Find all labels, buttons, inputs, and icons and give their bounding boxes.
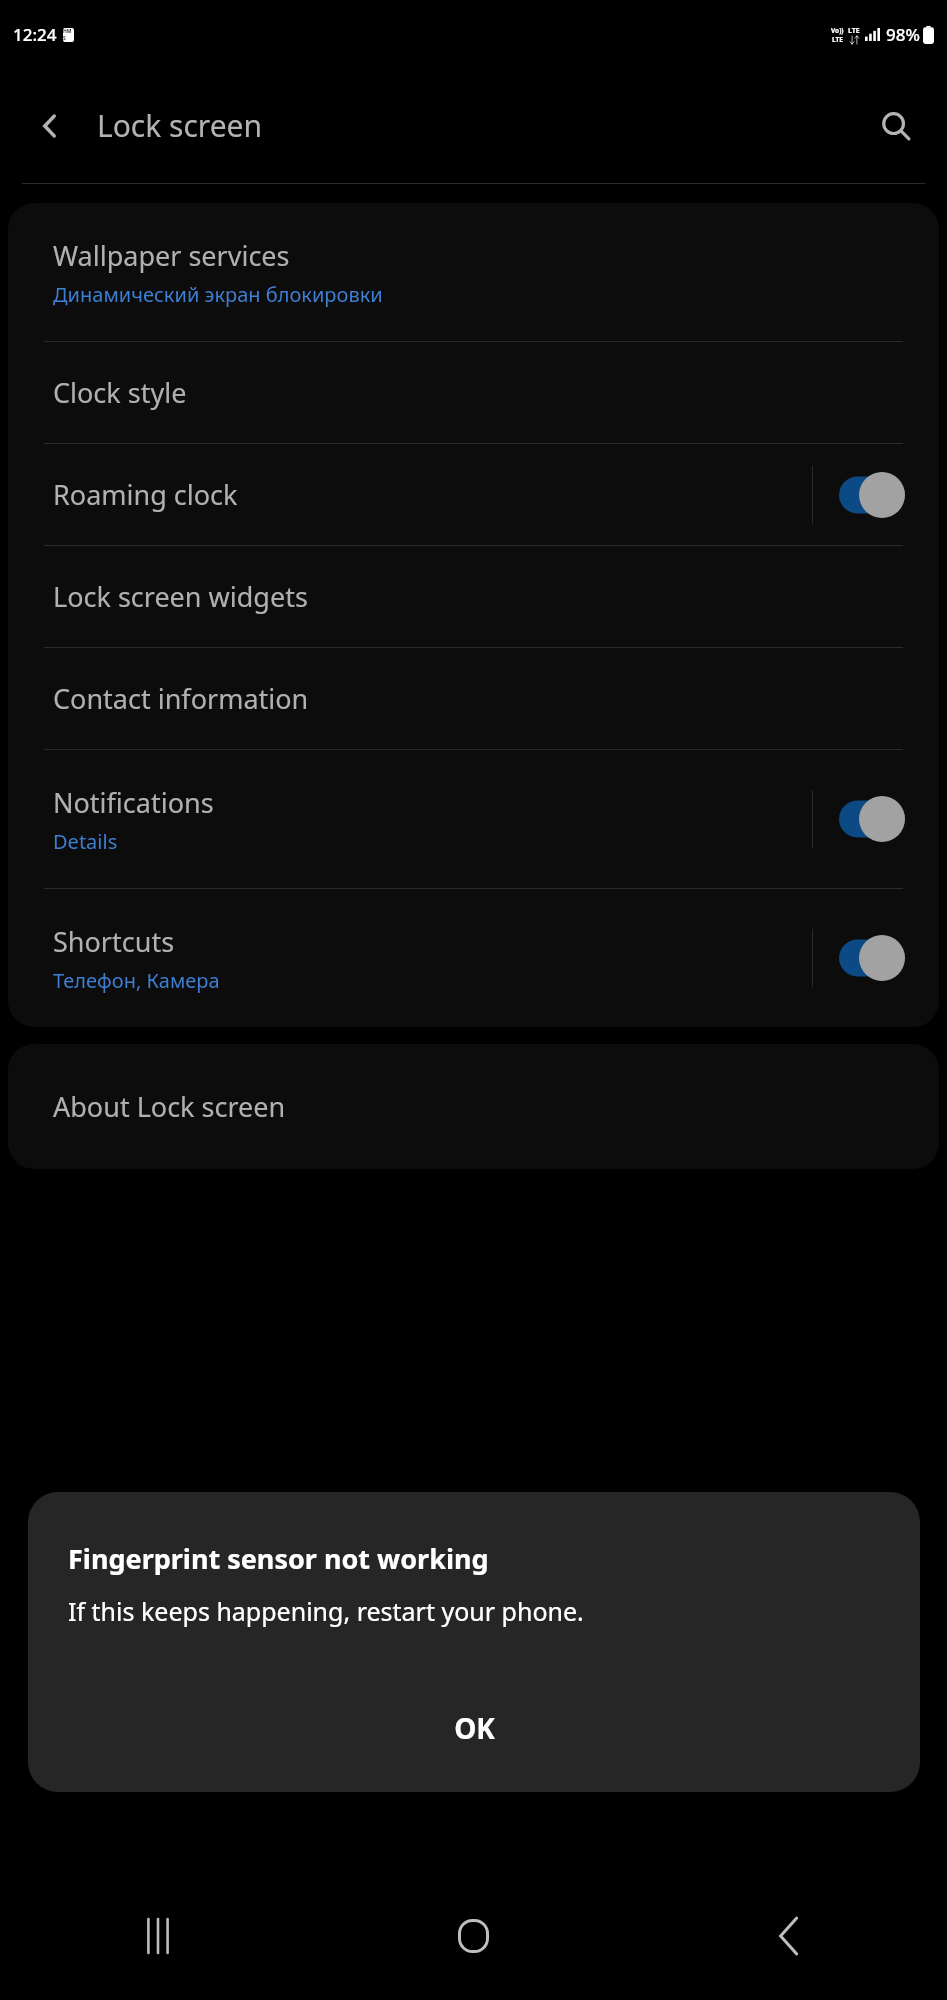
staticText: Динамический экран блокировки [53, 281, 383, 308]
staticText: If this keeps happening, restart your ph… [68, 1594, 584, 1628]
staticText: Wallpaper services [53, 237, 290, 274]
staticText: About Lock screen [53, 1088, 939, 1125]
button[interactable]: Notifications [8, 750, 939, 888]
staticText: Lock screen widgets [53, 578, 939, 615]
button[interactable]: Roaming clock [8, 444, 939, 545]
button[interactable]: Shortcuts [8, 889, 939, 1027]
button[interactable]: About Lock screen [8, 1044, 939, 1169]
staticText: 98% [886, 23, 920, 46]
button[interactable]: Toggle [839, 472, 905, 518]
staticText: Fingerprint sensor not working [68, 1540, 489, 1577]
button[interactable]: OK [28, 1674, 920, 1782]
staticText: LTE [848, 26, 860, 36]
button[interactable]: Toggle [839, 796, 905, 842]
button[interactable]: Wallpaper services [8, 203, 939, 341]
button[interactable]: Clock style [8, 342, 939, 443]
button[interactable]: Back [631, 1872, 947, 2000]
staticText: LTE [832, 35, 843, 44]
staticText: 12:24 [13, 23, 57, 46]
button[interactable]: Recent apps [0, 1872, 315, 2000]
staticText: Roaming clock [53, 476, 812, 513]
staticText: Details [53, 828, 118, 855]
staticText: Lock screen [97, 105, 263, 146]
button[interactable]: Toggle [839, 935, 905, 981]
staticText: HMS [63, 28, 74, 42]
staticText: Clock style [53, 374, 939, 411]
staticText: Notifications [53, 784, 214, 821]
staticText: Contact information [53, 680, 939, 717]
button[interactable]: Search [867, 97, 925, 155]
button[interactable]: Lock screen widgets [8, 546, 939, 647]
staticText: Телефон, Камера [53, 967, 220, 994]
staticText: Shortcuts [53, 923, 175, 960]
staticText: OK [454, 1709, 495, 1747]
button[interactable]: Back [22, 98, 78, 154]
button[interactable]: Contact information [8, 648, 939, 749]
staticText: Vo)) [831, 26, 844, 35]
button[interactable]: Home [315, 1872, 631, 2000]
